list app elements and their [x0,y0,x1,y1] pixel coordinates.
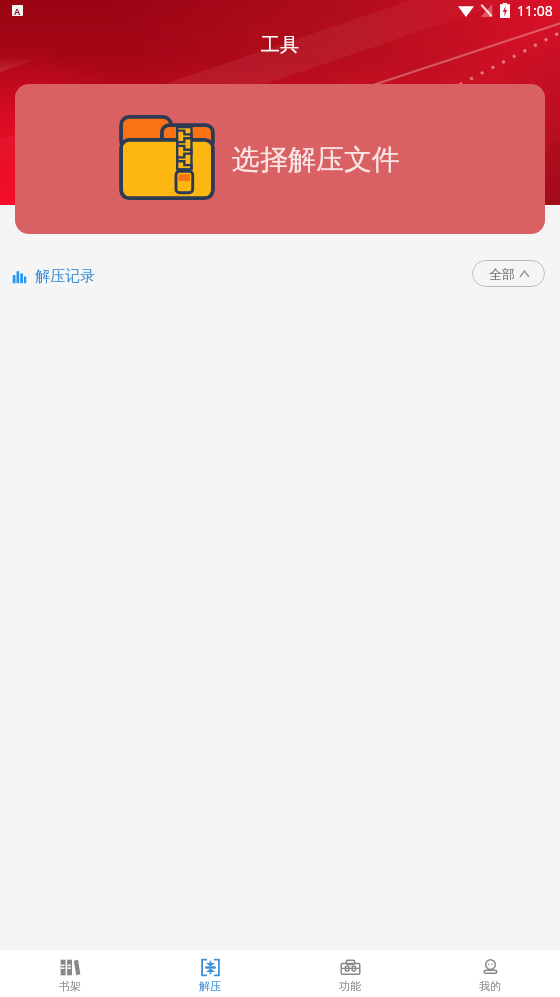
staticText: 解压记录 [35,267,95,286]
staticText: 我的 [479,979,501,993]
staticText: 11:08 [517,1,553,20]
staticText: 解压 [199,979,221,993]
staticText: 全部 [489,266,515,282]
button[interactable]: 解压记录 [12,261,95,292]
button[interactable]: 全部 [472,260,545,287]
staticText: 功能 [339,979,361,993]
button[interactable]: 选择解压文件 [15,84,545,234]
staticText: A [14,5,21,16]
button[interactable]: 书架 [0,950,140,997]
staticText: 选择解压文件 [232,142,400,177]
button[interactable]: 解压 [140,950,280,997]
staticText: 书架 [59,979,81,993]
staticText: 工具 [261,33,299,57]
button[interactable]: 功能 [280,950,420,997]
button[interactable]: 我的 [420,950,560,997]
